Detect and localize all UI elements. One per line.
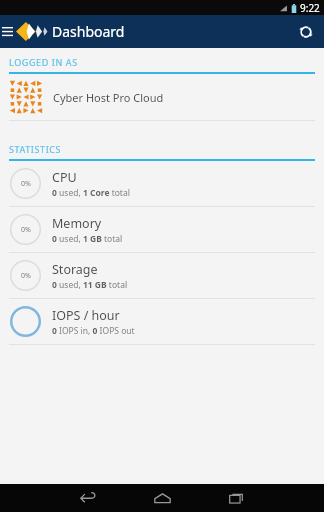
- staticText: Cyber Host Pro Cloud: [53, 90, 164, 105]
- staticText: 9:22: [300, 1, 320, 15]
- button[interactable]: 0%: [0, 161, 324, 206]
- button[interactable]: Account avatar: [0, 74, 324, 120]
- other: Account avatar: [9, 80, 43, 114]
- staticText: 0 used, 11 GB total: [52, 279, 128, 291]
- staticText: 0%: [21, 179, 31, 189]
- button[interactable]: IOPS / hour: [0, 299, 324, 344]
- staticText: 0%: [21, 225, 31, 235]
- staticText: 0 used, 1 Core total: [52, 187, 130, 199]
- staticText: STATISTICS: [9, 143, 62, 155]
- staticText: 0 used, 1 GB total: [52, 233, 123, 245]
- staticText: CPU: [52, 169, 77, 186]
- staticText: Memory: [52, 215, 102, 232]
- button[interactable]: Open navigation menu: [0, 15, 14, 48]
- button[interactable]: 0%: [0, 207, 324, 252]
- button[interactable]: Home: [125, 484, 199, 512]
- staticText: IOPS / hour: [52, 307, 120, 324]
- staticText: LOGGED IN AS: [9, 56, 78, 68]
- button[interactable]: Back: [51, 484, 125, 512]
- button[interactable]: Home logo: [14, 15, 48, 48]
- button[interactable]: Refresh: [288, 15, 324, 48]
- button[interactable]: Recent apps: [199, 484, 273, 512]
- staticText: Dashboard: [52, 22, 125, 41]
- staticText: Storage: [52, 261, 98, 278]
- button[interactable]: 0%: [0, 253, 324, 298]
- staticText: 0%: [21, 271, 31, 281]
- staticText: 0 IOPS in, 0 IOPS out: [52, 325, 135, 337]
